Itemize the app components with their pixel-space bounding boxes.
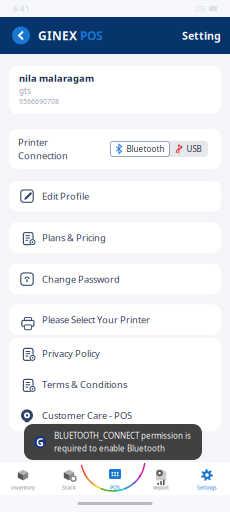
- staticText: nila malaragam: [19, 72, 94, 84]
- button[interactable]: Inventory: [0, 462, 46, 495]
- staticText: BLUETOOTH_CONNECT permission is: [54, 430, 191, 441]
- button[interactable]: Stock: [46, 462, 92, 495]
- button[interactable]: Privacy Policy: [9, 338, 221, 369]
- staticText: USB: [186, 144, 201, 154]
- staticText: Stock: [62, 484, 76, 491]
- staticText: Change Password: [42, 273, 120, 285]
- button[interactable]: Settings: [184, 462, 230, 495]
- button[interactable]: Back: [9, 21, 33, 49]
- staticText: Printer: [18, 136, 48, 148]
- button[interactable]: Change Password: [9, 264, 221, 294]
- button[interactable]: Customer Care - POS: [9, 400, 221, 431]
- staticText: Please Select Your Printer: [42, 313, 150, 326]
- staticText: gts: [19, 85, 31, 96]
- staticText: Report: [153, 484, 169, 491]
- staticText: Customer Care - POS: [42, 409, 132, 422]
- button[interactable]: Please Select Your Printer: [9, 304, 221, 335]
- button[interactable]: Bluetooth: [110, 141, 169, 156]
- staticText: Edit Profile: [42, 190, 89, 202]
- staticText: G: [36, 435, 44, 449]
- staticText: Terms & Conditions: [42, 378, 127, 391]
- button[interactable]: USB: [169, 141, 207, 156]
- button[interactable]: Plans & Pricing: [9, 222, 221, 253]
- staticText: GINEX: [38, 27, 77, 43]
- staticText: LTE: [195, 4, 206, 13]
- button[interactable]: Terms & Conditions: [9, 369, 221, 400]
- staticText: Inventory: [11, 484, 35, 491]
- staticText: 6:41: [13, 3, 30, 14]
- staticText: Settings: [197, 484, 217, 491]
- button[interactable]: POS: [92, 462, 138, 495]
- staticText: Plans & Pricing: [42, 231, 106, 244]
- staticText: POS: [80, 27, 103, 43]
- staticText: Privacy Policy: [42, 347, 100, 360]
- staticText: required to enable Bluetooth: [54, 443, 165, 454]
- staticText: POS: [110, 484, 120, 491]
- staticText: Connection: [18, 149, 68, 162]
- button[interactable]: Report: [138, 462, 184, 495]
- button[interactable]: Edit Profile: [9, 181, 221, 211]
- staticText: Setting: [182, 28, 221, 43]
- button[interactable]: Setting: [172, 21, 221, 50]
- staticText: Bluetooth: [126, 144, 164, 154]
- staticText: 9566690708: [19, 97, 59, 106]
